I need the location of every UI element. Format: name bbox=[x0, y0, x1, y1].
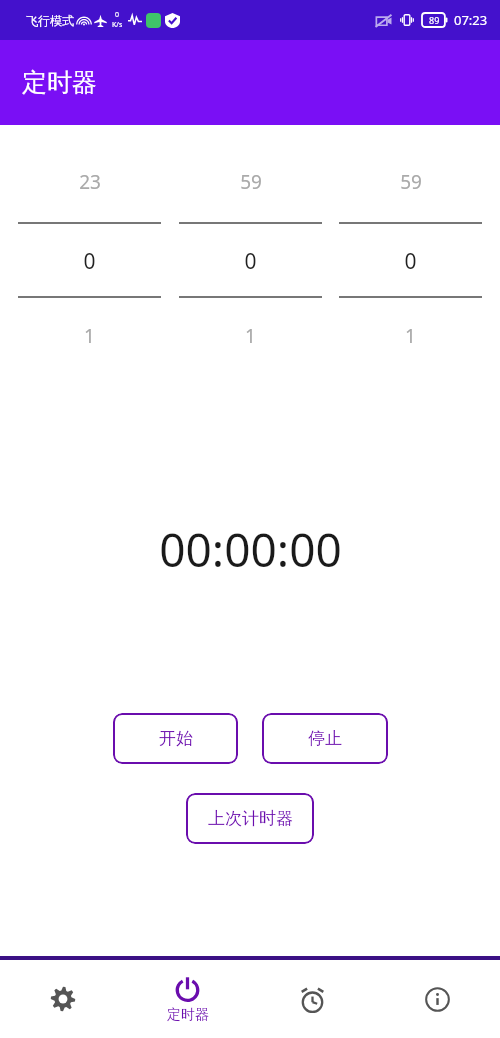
staticText: K/s bbox=[112, 20, 123, 30]
button[interactable]: Alarm bbox=[250, 960, 375, 1038]
staticText: 1 bbox=[405, 323, 416, 349]
staticText: 飞行模式 bbox=[26, 13, 74, 28]
staticText: 0 bbox=[404, 247, 417, 276]
button[interactable]: Info bbox=[375, 960, 500, 1038]
staticText: 定时器 bbox=[22, 67, 97, 98]
staticText: 59 bbox=[400, 169, 422, 195]
button[interactable]: 定时器 bbox=[125, 960, 250, 1038]
staticText: 1 bbox=[245, 323, 256, 349]
staticText: 0 bbox=[83, 247, 96, 276]
staticText: 1 bbox=[84, 323, 95, 349]
button[interactable]: Settings bbox=[0, 960, 125, 1038]
staticText: 开始 bbox=[159, 728, 193, 749]
staticText: 07:23 bbox=[454, 11, 488, 29]
button[interactable]: 开始 bbox=[113, 713, 238, 764]
staticText: 停止 bbox=[308, 728, 342, 749]
staticText: 上次计时器 bbox=[208, 808, 293, 829]
staticText: 0 bbox=[244, 247, 257, 276]
button[interactable]: 59 bbox=[339, 147, 482, 349]
staticText: 0 bbox=[115, 10, 120, 20]
staticText: 23 bbox=[79, 169, 101, 195]
staticText: 89 bbox=[429, 14, 440, 26]
staticText: 定时器 bbox=[167, 1006, 209, 1024]
button[interactable]: 上次计时器 bbox=[186, 793, 314, 844]
button[interactable]: 停止 bbox=[262, 713, 388, 764]
staticText: 00:00:00 bbox=[159, 518, 342, 581]
button[interactable]: 59 bbox=[179, 147, 322, 349]
button[interactable]: 23 bbox=[18, 147, 161, 349]
staticText: 59 bbox=[240, 169, 262, 195]
